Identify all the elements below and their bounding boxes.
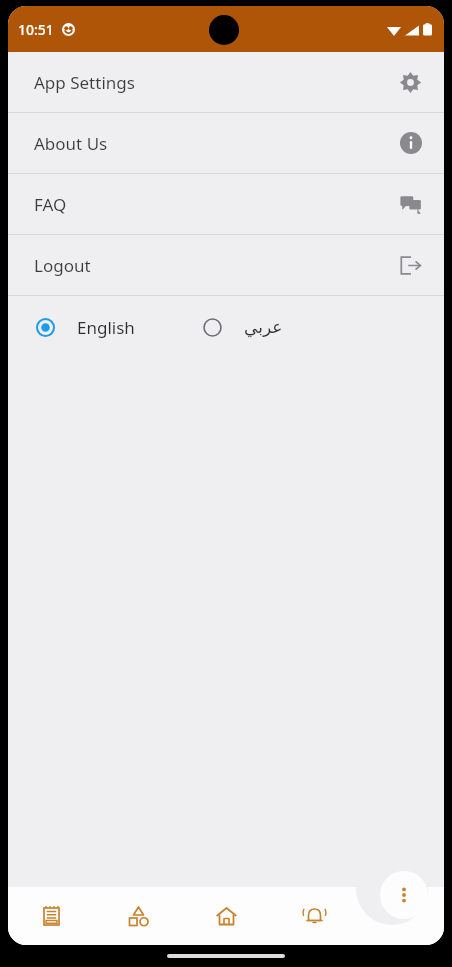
button[interactable]: App Settings [8, 52, 444, 112]
button[interactable]: عربي [203, 317, 291, 337]
button[interactable]: Logout [8, 235, 444, 295]
staticText: Logout [34, 254, 91, 277]
button[interactable]: Categories [95, 887, 182, 945]
staticText: About Us [34, 132, 108, 155]
button[interactable]: About Us [8, 113, 444, 173]
staticText: English [77, 316, 135, 339]
button[interactable]: More options [380, 871, 428, 919]
staticText: App Settings [34, 71, 135, 94]
button[interactable]: Notifications [270, 887, 358, 945]
button[interactable]: Orders [8, 887, 95, 945]
staticText: عربي [244, 317, 283, 337]
staticText: 10:51 [18, 20, 54, 39]
staticText: FAQ [34, 193, 67, 216]
button[interactable]: Home [182, 887, 270, 945]
button[interactable]: English [8, 316, 143, 339]
button[interactable]: FAQ [8, 174, 444, 234]
